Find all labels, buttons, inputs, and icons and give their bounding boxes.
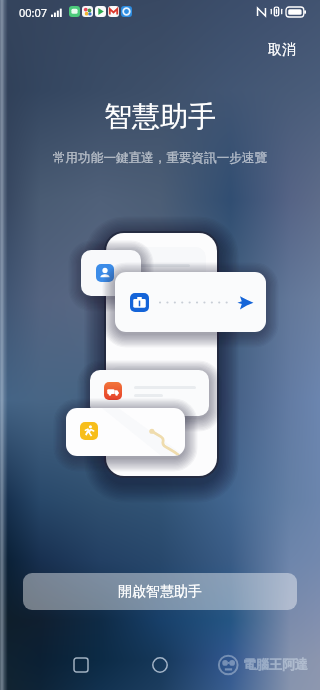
staticText: 電腦王阿達 bbox=[243, 656, 308, 672]
button[interactable]: 開啟智慧助手 bbox=[23, 573, 297, 610]
staticText: 00:07 bbox=[19, 5, 48, 20]
staticText: 開啟智慧助手 bbox=[118, 583, 202, 601]
staticText: 智慧助手 bbox=[104, 99, 216, 134]
button[interactable]: Recents bbox=[64, 648, 98, 682]
button[interactable]: Home bbox=[143, 648, 177, 682]
button[interactable]: 取消 bbox=[262, 37, 302, 63]
staticText: 取消 bbox=[268, 41, 296, 59]
staticText: 常用功能一鍵直達，重要資訊一步速覽 bbox=[53, 150, 268, 166]
